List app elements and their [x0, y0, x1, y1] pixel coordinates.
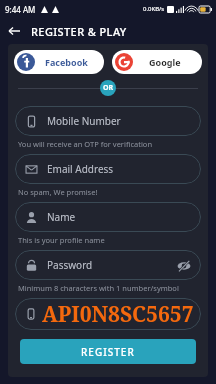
button[interactable]: Email Address [15, 154, 201, 184]
staticText: REGISTER & PLAY [31, 24, 127, 39]
staticText: Name [47, 210, 76, 224]
button[interactable]: Google [112, 50, 202, 74]
staticText: This is your profile name [18, 235, 105, 245]
staticText: Google [149, 56, 181, 68]
staticText: API0N8SC5657 [42, 300, 194, 329]
button[interactable]: Facebook [14, 50, 104, 74]
staticText: You will receive an OTP for verification [18, 139, 153, 149]
button[interactable]: API0N8SC5657 [15, 298, 201, 330]
button[interactable]: Name [15, 202, 201, 232]
button[interactable]: Mobile Number [15, 106, 201, 136]
button[interactable]: REGISTER [20, 339, 196, 364]
staticText: Email Address [47, 162, 114, 176]
staticText: REGISTER [81, 345, 135, 359]
staticText: 0.0KB/s [143, 5, 165, 13]
staticText: 9:44 AM [5, 4, 36, 15]
staticText: Minimum 8 characters with 1 number/symbo… [18, 283, 179, 293]
staticText: OR [103, 83, 114, 93]
staticText: Mobile Number [47, 114, 121, 128]
button[interactable]: Show password [176, 258, 191, 273]
staticText: Facebook [45, 56, 88, 68]
button[interactable]: Password [15, 250, 201, 280]
staticText: No spam, We promise! [18, 187, 98, 197]
button[interactable]: Back [4, 21, 24, 41]
staticText: Password [47, 258, 93, 272]
